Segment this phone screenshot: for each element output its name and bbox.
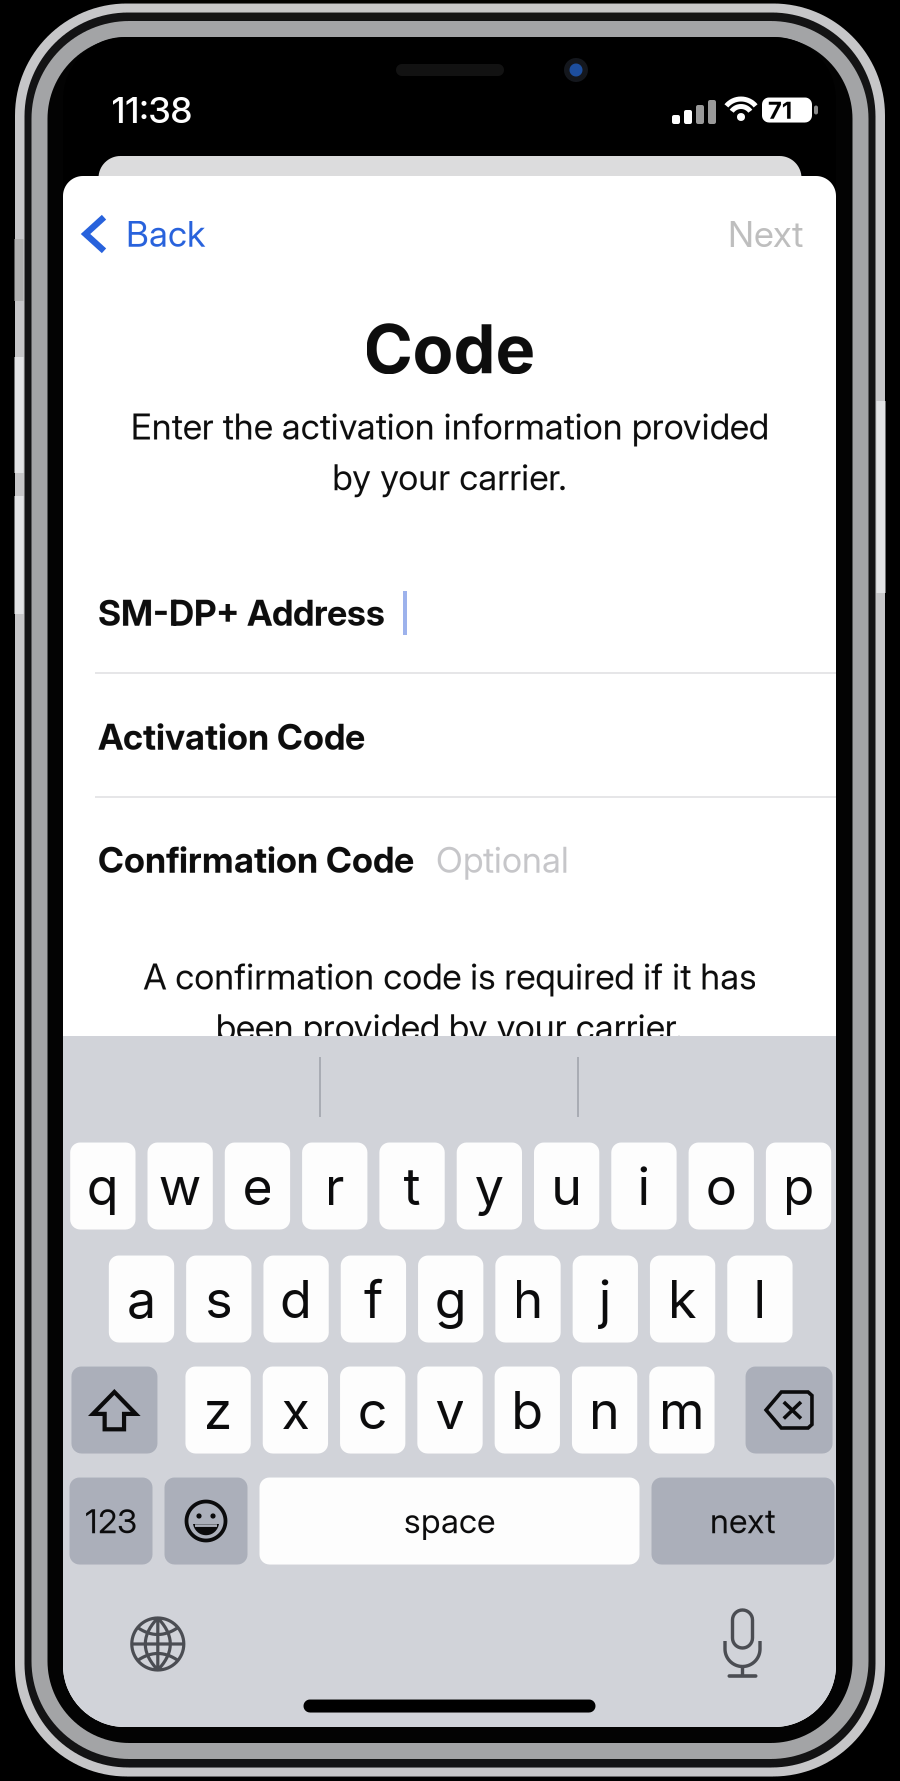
staticText: Enter the activation information provide… bbox=[130, 405, 768, 499]
staticText: s bbox=[205, 1267, 232, 1330]
button[interactable]: q bbox=[70, 1142, 135, 1229]
button[interactable]: h bbox=[495, 1255, 561, 1342]
staticText: Next bbox=[728, 212, 803, 256]
staticText: e bbox=[242, 1154, 272, 1217]
staticText: m bbox=[659, 1378, 705, 1441]
staticText: c bbox=[358, 1378, 388, 1441]
staticText: f bbox=[364, 1267, 383, 1330]
button[interactable]: l bbox=[727, 1255, 792, 1342]
staticText: o bbox=[706, 1154, 737, 1217]
button[interactable]: b bbox=[495, 1366, 560, 1453]
button[interactable]: space bbox=[259, 1477, 639, 1564]
button[interactable]: next bbox=[651, 1477, 834, 1564]
button[interactable]: y bbox=[457, 1142, 522, 1229]
button[interactable]: u bbox=[534, 1142, 599, 1229]
button[interactable]: s bbox=[186, 1255, 251, 1342]
button[interactable]: n bbox=[572, 1366, 637, 1453]
staticText: n bbox=[589, 1378, 620, 1441]
staticText: Back bbox=[126, 213, 205, 255]
button[interactable]: a bbox=[109, 1255, 174, 1342]
staticText: h bbox=[512, 1267, 543, 1330]
staticText: A confirmation code is required if it ha… bbox=[143, 955, 756, 1049]
staticText: x bbox=[281, 1378, 309, 1441]
staticText: t bbox=[404, 1154, 421, 1217]
staticText: Code bbox=[363, 309, 535, 389]
button[interactable]: Back bbox=[82, 204, 262, 264]
button[interactable]: Shift bbox=[71, 1366, 157, 1453]
button[interactable]: k bbox=[650, 1255, 715, 1342]
button[interactable]: e bbox=[225, 1142, 290, 1229]
staticText: k bbox=[668, 1267, 697, 1330]
button[interactable]: 123 bbox=[69, 1477, 152, 1564]
button[interactable]: r bbox=[302, 1142, 367, 1229]
button[interactable]: d bbox=[263, 1255, 329, 1342]
staticText: Activation Code bbox=[98, 716, 365, 758]
staticText: r bbox=[325, 1154, 345, 1217]
staticText: SM-DP+ Address bbox=[98, 592, 385, 634]
staticText: l bbox=[753, 1267, 766, 1330]
staticText: Optional bbox=[436, 839, 569, 881]
staticText: a bbox=[127, 1267, 156, 1330]
staticText: w bbox=[159, 1154, 202, 1217]
button[interactable]: c bbox=[340, 1366, 405, 1453]
staticText: next bbox=[710, 1501, 776, 1541]
staticText: g bbox=[435, 1267, 467, 1330]
button[interactable]: Next keyboard bbox=[123, 1609, 193, 1679]
button[interactable]: z bbox=[185, 1366, 251, 1453]
button[interactable]: v bbox=[417, 1366, 483, 1453]
staticText: d bbox=[280, 1267, 312, 1330]
staticText: 11:38 bbox=[111, 88, 192, 132]
staticText: j bbox=[599, 1267, 612, 1330]
staticText: y bbox=[475, 1154, 504, 1217]
button[interactable]: Next bbox=[653, 204, 803, 264]
staticText: 123 bbox=[85, 1501, 137, 1541]
staticText: b bbox=[511, 1378, 543, 1441]
button[interactable]: m bbox=[649, 1366, 714, 1453]
button[interactable]: i bbox=[611, 1142, 677, 1229]
button[interactable]: Emoji bbox=[164, 1477, 247, 1564]
button[interactable]: j bbox=[573, 1255, 638, 1342]
staticText: p bbox=[782, 1154, 814, 1217]
button[interactable]: f bbox=[341, 1255, 406, 1342]
button[interactable]: Delete bbox=[745, 1366, 832, 1453]
staticText: Confirmation Code bbox=[98, 839, 414, 881]
button[interactable]: g bbox=[418, 1255, 483, 1342]
button[interactable]: o bbox=[689, 1142, 754, 1229]
staticText: 71 bbox=[768, 95, 792, 124]
staticText: u bbox=[551, 1154, 582, 1217]
button[interactable]: Dictation bbox=[707, 1601, 777, 1681]
button[interactable]: t bbox=[379, 1142, 445, 1229]
button[interactable]: w bbox=[147, 1142, 213, 1229]
staticText: space bbox=[404, 1501, 495, 1541]
staticText: z bbox=[204, 1378, 233, 1441]
button[interactable]: x bbox=[263, 1366, 328, 1453]
staticText: v bbox=[435, 1378, 464, 1441]
staticText: i bbox=[637, 1154, 650, 1217]
button[interactable]: p bbox=[766, 1142, 831, 1229]
staticText: q bbox=[87, 1154, 119, 1217]
